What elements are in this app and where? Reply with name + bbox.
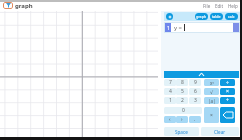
staticText: graph (15, 2, 33, 10)
staticText: . (194, 116, 196, 123)
button[interactable]: xʸ (204, 79, 219, 86)
button[interactable]: 7 (164, 79, 176, 86)
button[interactable]: 5 (176, 88, 188, 95)
staticText: 7 (169, 79, 172, 86)
staticText: 1 (167, 25, 170, 32)
button[interactable]: table (210, 13, 223, 20)
button[interactable]: 2 (176, 97, 188, 104)
staticText: 9 (194, 79, 197, 86)
button[interactable]: Add expression (166, 13, 173, 20)
staticText: y = (174, 24, 183, 32)
button[interactable]: + (220, 97, 235, 104)
button[interactable]: 1 (165, 23, 171, 33)
staticText: › (181, 116, 183, 123)
button[interactable]: ‹ (164, 116, 176, 123)
staticText: × (226, 88, 229, 95)
staticText: 6 (194, 88, 197, 95)
staticText: Clear (214, 129, 226, 135)
button[interactable]: Space (164, 127, 199, 136)
staticText: Edit (215, 3, 224, 9)
button[interactable]: 8 (176, 79, 188, 86)
button[interactable]: 0 (164, 107, 202, 114)
button[interactable]: √ (204, 88, 219, 95)
staticText: xʸ (210, 80, 214, 86)
staticText: √ (210, 89, 214, 95)
staticText: 0 (182, 107, 185, 114)
button[interactable]: |a| (204, 97, 219, 104)
button[interactable]: 4 (164, 88, 176, 95)
button[interactable]: Backspace (220, 107, 235, 123)
staticText: calc (228, 14, 235, 19)
staticText: table (212, 14, 221, 19)
button[interactable]: 6 (189, 88, 201, 95)
staticText: + (226, 97, 229, 104)
staticText: ‹ (169, 116, 171, 123)
staticText: File (203, 3, 211, 9)
staticText: |a| (208, 98, 216, 104)
button[interactable]: × (204, 107, 219, 123)
staticText: 8 (181, 79, 184, 86)
staticText: 2 (181, 97, 184, 104)
staticText: × (210, 112, 213, 119)
staticText: graph (196, 14, 207, 19)
button[interactable]: ÷ (220, 79, 235, 86)
button[interactable]: › (176, 116, 188, 123)
staticText: 1 (169, 97, 172, 104)
button[interactable]: calc (225, 13, 238, 20)
button[interactable]: 1 (164, 97, 176, 104)
button[interactable]: 3 (189, 97, 201, 104)
button[interactable]: . (189, 116, 201, 123)
button[interactable]: Hide keyboard (164, 71, 239, 78)
button[interactable]: Expression menu (233, 23, 239, 33)
button[interactable]: Clear (201, 127, 239, 136)
staticText: ÷ (226, 79, 229, 86)
staticText: Space (175, 129, 188, 135)
button[interactable]: 9 (189, 79, 201, 86)
button[interactable]: graph (195, 13, 208, 20)
staticText: 5 (181, 88, 184, 95)
button[interactable]: × (220, 88, 235, 95)
staticText: 3 (194, 97, 197, 104)
staticText: 4 (169, 88, 172, 95)
staticText: Help (228, 3, 238, 9)
